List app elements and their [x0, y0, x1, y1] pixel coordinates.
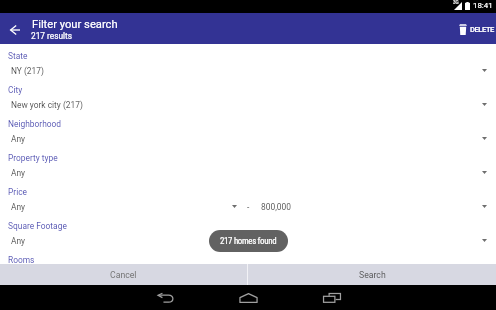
staticText: City [8, 85, 23, 95]
button[interactable]: Neighborhood [0, 112, 496, 146]
button[interactable]: Home [230, 285, 266, 310]
staticText: New york city (217) [11, 100, 83, 110]
staticText: - [247, 202, 250, 212]
staticText: Any [11, 168, 26, 178]
staticText: Rooms [8, 255, 35, 265]
staticText: Any [11, 134, 26, 144]
button[interactable]: Cancel [0, 264, 247, 285]
button[interactable]: Rooms [0, 248, 496, 264]
button[interactable]: Navigate up [0, 13, 30, 44]
button[interactable]: State [0, 44, 496, 78]
staticText: Search [359, 270, 386, 280]
staticText: State [8, 51, 28, 61]
button[interactable]: Search [248, 264, 496, 285]
staticText: NY (217) [11, 66, 44, 76]
staticText: 800,000 [261, 202, 291, 212]
staticText: Neighborhood [8, 119, 62, 129]
staticText: Cancel [110, 270, 137, 280]
staticText: 217 homes found [220, 236, 277, 246]
button[interactable]: Price [0, 180, 496, 214]
staticText: DELETE [470, 25, 494, 34]
staticText: Square Footage [8, 221, 67, 231]
button[interactable]: City [0, 78, 496, 112]
staticText: Property type [8, 153, 58, 163]
staticText: Any [11, 236, 26, 246]
button[interactable]: Recent apps [314, 285, 350, 310]
button[interactable]: Property type [0, 146, 496, 180]
staticText: 3G [453, 0, 459, 5]
staticText: 18:41 [473, 1, 493, 10]
button[interactable]: DELETE [454, 13, 496, 44]
button[interactable]: Back [147, 285, 183, 310]
staticText: 217 results [31, 31, 73, 41]
button[interactable]: Square Footage [0, 214, 496, 248]
staticText: Filter your search [32, 18, 118, 31]
staticText: Any [11, 202, 26, 212]
staticText: Price [8, 187, 28, 197]
